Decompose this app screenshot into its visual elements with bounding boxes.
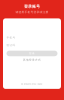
staticText: 验证码 bbox=[6, 43, 15, 47]
button[interactable]: 我已阅读并同意《用户协议》《隐私政策》 bbox=[3, 83, 61, 85]
button[interactable]: 其他登录方式 bbox=[3, 58, 61, 61]
staticText: 登录账号 bbox=[24, 4, 40, 9]
staticText: 请使用手机号登录或注册 bbox=[15, 10, 48, 14]
staticText: 登录 bbox=[29, 52, 35, 55]
staticText: 其他登录方式 bbox=[23, 58, 41, 61]
staticText: 我已阅读并同意《用户协议》《隐私政策》 bbox=[24, 83, 43, 85]
staticText: 手机号 bbox=[6, 36, 15, 39]
button[interactable]: 登录 bbox=[6, 51, 57, 56]
